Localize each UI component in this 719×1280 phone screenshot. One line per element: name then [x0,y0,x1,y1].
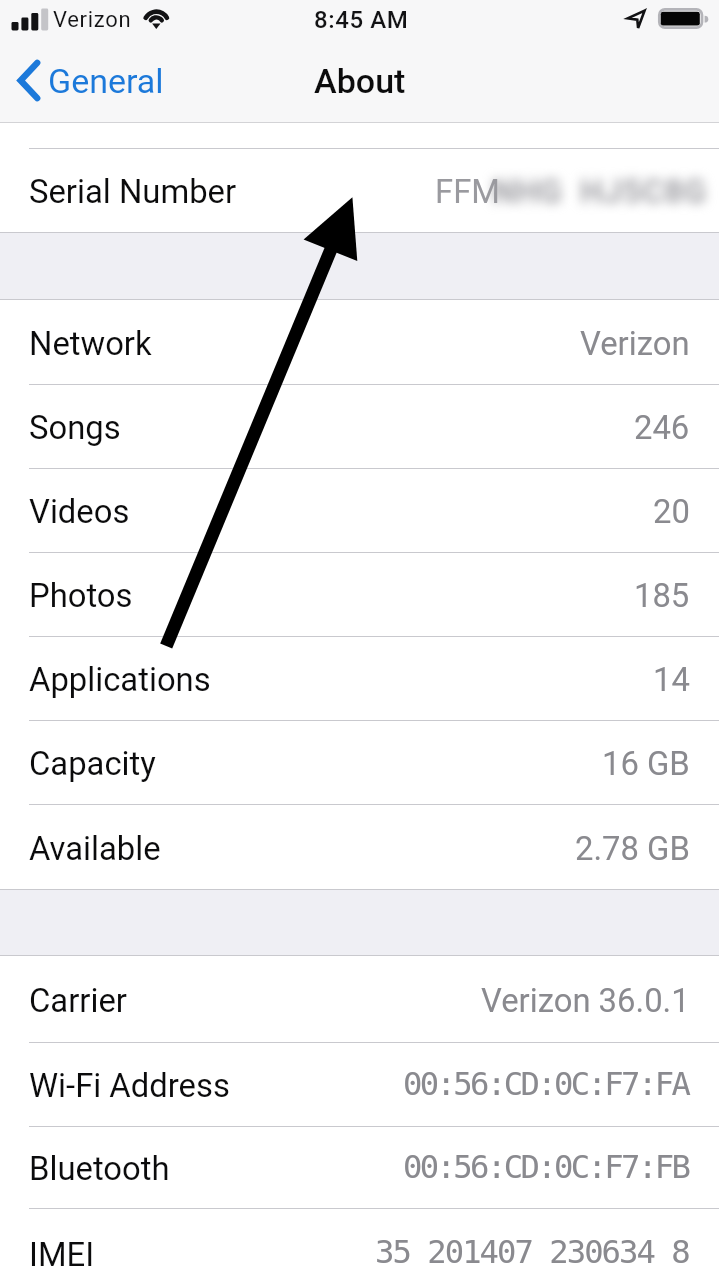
staticText: 16 GB [602,745,690,783]
button[interactable]: Photos [0,552,719,636]
button[interactable]: Available [0,804,719,889]
staticText: 20 [653,493,690,531]
button[interactable]: Bluetooth [0,1126,719,1208]
staticText: 00:56:CD:0C:F7:FB [403,1148,689,1185]
button[interactable]: Network [0,300,719,384]
staticText: Videos [29,493,130,531]
staticText: 00:56:CD:0C:F7:FA [403,1065,689,1102]
staticText: Photos [29,577,133,615]
staticText: 8:45 AM [314,6,409,34]
staticText: FFM [435,173,500,211]
staticText: Carrier [29,982,127,1020]
staticText: 14 [653,661,690,699]
staticText: Capacity [29,745,156,783]
staticText: Serial Number [29,173,237,211]
staticText: Verizon [53,7,132,33]
other: Annotation arrow [0,0,719,1280]
button[interactable]: Carrier [0,956,719,1042]
button[interactable]: Applications [0,636,719,720]
staticText: IMEI [29,1236,95,1274]
button[interactable]: Wi-Fi Address [0,1042,719,1126]
staticText: 246 [634,409,690,447]
staticText: About [314,61,406,101]
staticText: NHG HJ5C8G [492,173,707,211]
staticText: Network [29,325,152,363]
staticText: Bluetooth [29,1150,170,1188]
staticText: Verizon 36.0.1 [481,982,690,1020]
button[interactable]: Capacity [0,720,719,804]
staticText: Verizon [580,325,690,363]
button[interactable]: Videos [0,468,719,552]
button[interactable]: Serial Number [0,148,719,232]
staticText: Available [29,830,161,868]
staticText: Wi-Fi Address [29,1067,230,1105]
staticText: Songs [29,409,121,447]
button[interactable]: General [0,45,220,123]
button[interactable]: Songs [0,384,719,468]
staticText: 2.78 GB [575,830,690,868]
button[interactable]: IMEI [0,1208,719,1280]
staticText: 35 201407 230634 8 [375,1233,689,1270]
staticText: General [48,61,164,101]
staticText: 185 [634,577,690,615]
staticText: Applications [29,661,211,699]
